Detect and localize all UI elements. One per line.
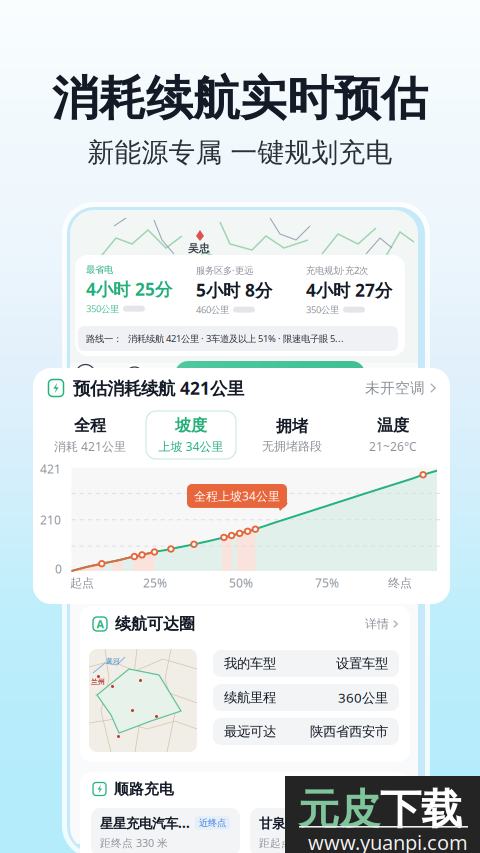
- staticText: 元皮: [298, 784, 380, 835]
- staticText: 75%: [315, 575, 339, 591]
- staticText: 陕西省西安市: [310, 723, 388, 740]
- button[interactable]: 最远可达: [213, 718, 399, 745]
- button[interactable]: 续航里程: [213, 684, 399, 711]
- staticText: 360公里: [338, 689, 388, 706]
- staticText: 充电规划·充2次: [306, 264, 368, 276]
- staticText: 距起点 21公里: [259, 836, 329, 850]
- staticText: 终点: [388, 576, 412, 590]
- staticText: 我的车型: [224, 655, 276, 672]
- staticText: 5小时 8分: [196, 278, 272, 301]
- staticText: 吴忠: [188, 242, 210, 255]
- staticText: 无拥堵路段: [262, 439, 322, 454]
- staticText: 星星充电汽车...: [100, 814, 190, 832]
- staticText: 近终点: [199, 817, 226, 829]
- staticText: 460公里: [196, 303, 229, 316]
- staticText: 兰州: [91, 678, 105, 686]
- staticText: 210: [40, 512, 61, 528]
- staticText: 4小时 25分: [86, 277, 172, 300]
- staticText: 温度: [377, 416, 409, 435]
- staticText: 最远可达: [224, 723, 276, 740]
- staticText: 详情: [365, 617, 389, 631]
- staticText: www.yuanpi.com: [308, 829, 468, 853]
- staticText: 350公里: [86, 302, 119, 315]
- staticText: 顺路充电: [114, 780, 174, 798]
- staticText: 黄河: [106, 657, 120, 665]
- staticText: 全程上坡34公里: [194, 488, 280, 504]
- staticText: 4小时 27分: [306, 278, 392, 301]
- staticText: 服务区多·更远: [196, 264, 253, 276]
- staticText: 消耗 421公里: [54, 438, 126, 454]
- staticText: 距终点 330 米: [100, 836, 168, 850]
- staticText: 路线一： 消耗续航 421公里 · 3车道及以上 51% · 限速电子眼 5..…: [86, 332, 344, 345]
- staticText: 设置车型: [336, 655, 388, 672]
- staticText: 50%: [229, 575, 253, 591]
- staticText: 全程: [74, 416, 106, 435]
- button[interactable]: 温度: [348, 411, 438, 459]
- button[interactable]: 拥堵: [247, 411, 337, 459]
- staticText: 新能源专属 一键规划充电: [87, 136, 392, 169]
- staticText: 续航可达圈: [115, 614, 195, 634]
- staticText: 下载: [380, 784, 462, 835]
- staticText: 续航里程: [224, 689, 276, 706]
- staticText: 甘泉服务区停...: [259, 814, 349, 832]
- staticText: 0: [55, 561, 62, 577]
- staticText: 21~26°C: [369, 438, 417, 454]
- staticText: 未开空调: [365, 379, 425, 397]
- staticText: 421: [40, 461, 61, 477]
- staticText: 消耗续航实时预估: [52, 70, 428, 127]
- staticText: 上坡 34公里: [158, 438, 223, 454]
- staticText: 最省电: [86, 264, 113, 275]
- button[interactable]: 全程: [45, 411, 135, 459]
- button[interactable]: 未开空调: [365, 379, 436, 397]
- button[interactable]: 甘泉服务区停...: [250, 808, 399, 853]
- button[interactable]: 详情: [365, 617, 398, 631]
- staticText: 25%: [143, 575, 167, 591]
- staticText: 350公里: [306, 303, 339, 316]
- staticText: 拥堵: [276, 416, 308, 436]
- staticText: A: [96, 617, 103, 631]
- staticText: 预估消耗续航 421公里: [73, 376, 244, 399]
- button[interactable]: 坡度: [146, 411, 236, 459]
- button[interactable]: 我的车型: [213, 650, 399, 677]
- staticText: 起点: [70, 576, 94, 590]
- button[interactable]: 星星充电汽车...: [91, 808, 240, 853]
- staticText: 坡度: [175, 416, 207, 435]
